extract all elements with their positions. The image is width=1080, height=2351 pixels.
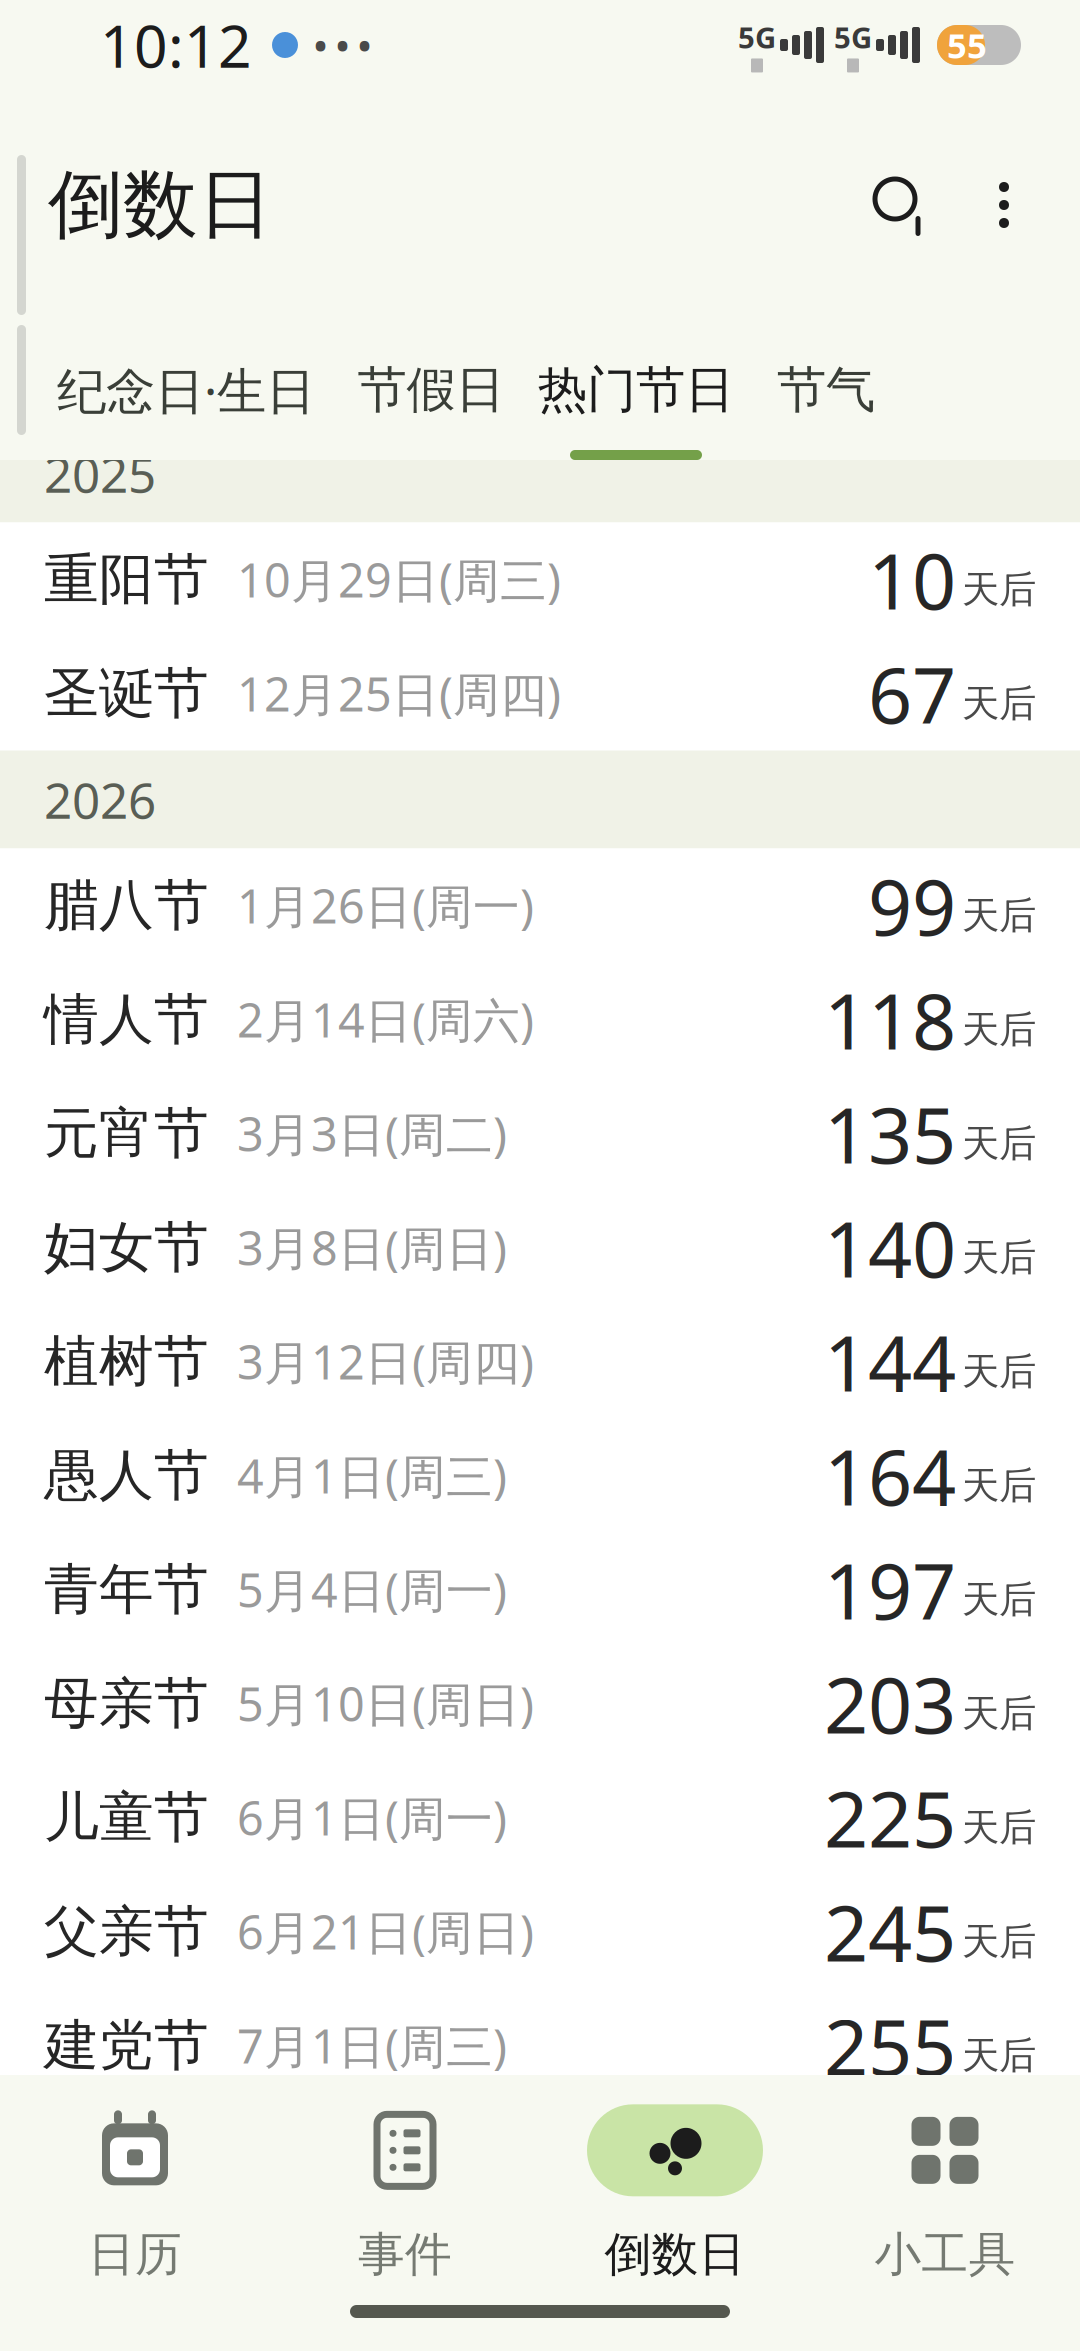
staticText: 天后 [962,893,1036,938]
staticText: 135 [824,1082,956,1185]
staticText: 3月3日(周二) [237,1102,507,1164]
staticText: 3月12日(周四) [237,1330,534,1392]
staticText: 5G [834,17,872,56]
staticText: 99 [868,854,956,957]
button[interactable]: 腊八节 [0,848,1080,962]
staticText: 腊八节 [44,872,209,939]
button[interactable]: 圣诞节 [0,636,1080,750]
staticText: 建党节 [44,2012,209,2079]
button[interactable]: 搜索 [846,150,956,260]
button[interactable]: 小工具 [810,2075,1080,2305]
staticText: 热门节日 [538,360,734,420]
staticText: 元宵节 [44,1100,209,1167]
staticText: 妇女节 [44,1214,209,1281]
staticText: 10 [868,528,956,631]
staticText: 天后 [962,1691,1036,1736]
button[interactable]: 儿童节 [0,1760,1080,1874]
staticText: 255 [824,1994,956,2097]
staticText: 天后 [962,1577,1036,1622]
button[interactable]: 节假日 [336,330,526,460]
button[interactable]: 植树节 [0,1304,1080,1418]
staticText: 植树节 [44,1328,209,1395]
staticText: 事件 [358,2226,452,2283]
staticText: 倒数日 [48,159,273,251]
staticText: 愚人节 [44,1442,209,1509]
staticText: 倒数日 [604,2226,745,2283]
staticText: 日历 [88,2226,182,2283]
staticText: 天后 [962,1463,1036,1508]
staticText: 2月14日(周六) [237,988,534,1050]
button[interactable]: 倒数日 [540,2075,810,2305]
button[interactable]: 热门节日 [526,330,746,460]
staticText: 144 [824,1310,956,1413]
staticText: 情人节 [44,986,209,1053]
staticText: 5G [738,17,776,56]
staticText: 节假日 [357,360,504,420]
staticText: 天后 [962,1349,1036,1394]
staticText: 天后 [962,681,1036,726]
button[interactable]: 节气 [746,330,906,460]
button[interactable]: 日历 [0,2075,270,2305]
staticText: 197 [824,1538,956,1641]
button[interactable]: 更多选项 [956,150,1052,260]
staticText: 7月1日(周三) [237,2014,507,2076]
staticText: 天后 [962,1007,1036,1052]
staticText: 203 [824,1652,956,1755]
staticText: 天后 [962,2033,1036,2078]
staticText: 3月8日(周日) [237,1216,507,1278]
staticText: 5月4日(周一) [237,1558,507,1620]
button[interactable]: 愚人节 [0,1418,1080,1532]
staticText: 2025 [44,441,156,506]
button[interactable]: 父亲节 [0,1874,1080,1988]
button[interactable]: 元宵节 [0,1076,1080,1190]
staticText: 10月29日(周三) [237,548,561,610]
button[interactable]: 青年节 [0,1532,1080,1646]
staticText: 4月1日(周三) [237,1444,507,1506]
staticText: 225 [824,1766,956,1869]
staticText: 天后 [962,1121,1036,1166]
staticText: 67 [868,642,956,745]
staticText: 12月25日(周四) [237,662,561,724]
button[interactable]: 母亲节 [0,1646,1080,1760]
staticText: 245 [824,1880,956,1983]
staticText: 青年节 [44,1556,209,1623]
staticText: 5月10日(周日) [237,1672,534,1734]
staticText: 天后 [962,1235,1036,1280]
staticText: 118 [824,968,956,1071]
button[interactable]: 事件 [270,2075,540,2305]
staticText: 55 [947,22,987,68]
staticText: 1月26日(周一) [237,874,534,936]
staticText: 节气 [777,360,875,420]
staticText: 父亲节 [44,1898,209,1965]
staticText: 天后 [962,1919,1036,1964]
staticText: 圣诞节 [44,660,209,727]
staticText: 天后 [962,567,1036,612]
staticText: 2026 [44,767,156,832]
button[interactable]: 重阳节 [0,522,1080,636]
staticText: 小工具 [874,2226,1015,2283]
staticText: 10:12 [100,6,252,84]
staticText: 6月21日(周日) [237,1900,534,1962]
staticText: 纪念日·生日 [57,357,315,423]
button[interactable]: 妇女节 [0,1190,1080,1304]
staticText: • • • [314,22,371,68]
staticText: 140 [824,1196,956,1299]
staticText: 6月1日(周一) [237,1786,507,1848]
button[interactable]: 纪念日·生日 [36,330,336,460]
button[interactable]: 情人节 [0,962,1080,1076]
staticText: 天后 [962,1805,1036,1850]
button[interactable]: 建党节 [0,1988,1080,2102]
staticText: 重阳节 [44,546,209,613]
staticText: 164 [824,1424,956,1527]
staticText: 儿童节 [44,1784,209,1851]
staticText: 母亲节 [44,1670,209,1737]
